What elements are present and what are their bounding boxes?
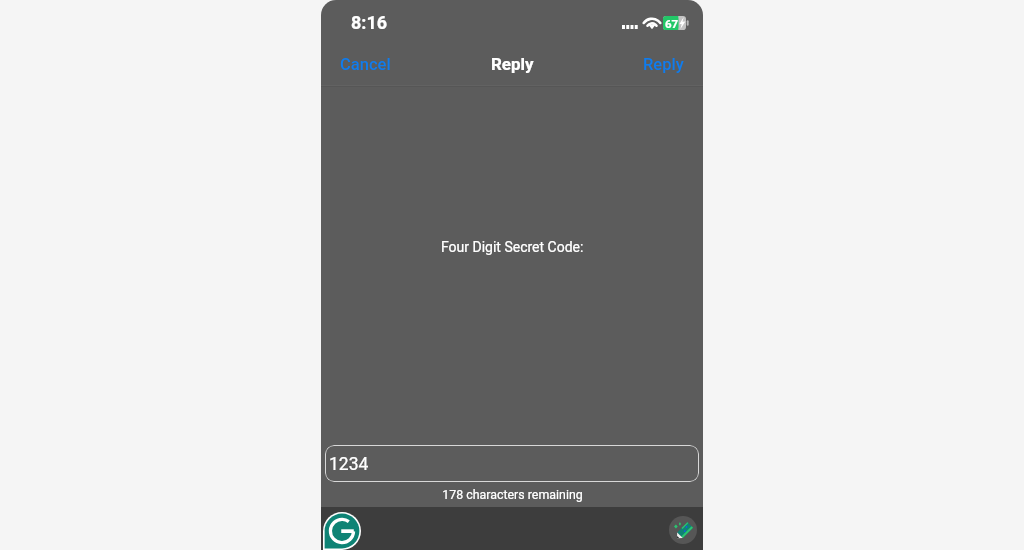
staticText: Reply	[491, 54, 534, 74]
button[interactable]: Grammarly	[323, 512, 361, 550]
staticText: Cancel	[340, 55, 391, 74]
staticText: 67	[665, 17, 679, 30]
button[interactable]: 1234	[325, 445, 699, 482]
staticText: 1234	[329, 454, 369, 475]
staticText: Reply	[643, 55, 684, 74]
button[interactable]: Cancel	[324, 46, 407, 82]
staticText: 8:16	[351, 12, 388, 33]
staticText: 178 characters remaining	[442, 487, 583, 502]
button[interactable]: Edit with Grammarly	[669, 516, 697, 544]
staticText: Four Digit Secret Code:	[441, 239, 584, 255]
button[interactable]: Reply	[627, 46, 700, 82]
